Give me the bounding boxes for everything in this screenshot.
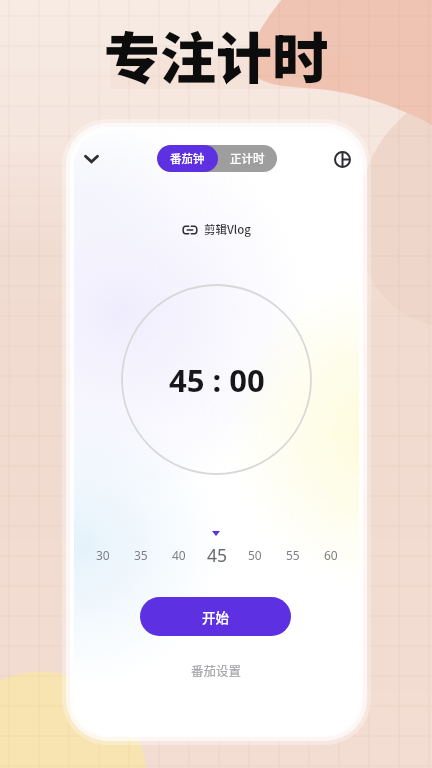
button[interactable]: 正计时	[218, 145, 277, 172]
button[interactable]: 50	[236, 542, 274, 568]
staticText: 45	[207, 543, 228, 567]
button[interactable]: 番茄设置	[183, 657, 250, 683]
button[interactable]: 35	[122, 542, 160, 568]
staticText: 40	[172, 547, 186, 563]
button[interactable]: 60	[312, 542, 350, 568]
button[interactable]: 45	[198, 542, 236, 568]
staticText: 50	[248, 547, 262, 563]
button[interactable]: 开始	[140, 597, 291, 636]
staticText: 正计时	[230, 150, 265, 167]
staticText: 60	[324, 547, 338, 563]
staticText: 45 : 00	[169, 359, 265, 401]
staticText: 开始	[202, 607, 229, 627]
staticText: 30	[96, 547, 110, 563]
button[interactable]: 剪辑Vlog	[176, 217, 257, 242]
staticText: 55	[286, 547, 300, 563]
staticText: 番茄钟	[170, 150, 205, 167]
staticText: 35	[134, 547, 148, 563]
staticText: 剪辑Vlog	[204, 221, 251, 238]
staticText: 番茄设置	[191, 661, 242, 679]
button[interactable]: 番茄钟	[157, 145, 218, 172]
button[interactable]: Collapse	[75, 143, 107, 175]
button[interactable]: 55	[274, 542, 312, 568]
button[interactable]: 30	[84, 542, 122, 568]
staticText: 专注计时	[104, 14, 328, 95]
button[interactable]: 40	[160, 542, 198, 568]
button[interactable]: Statistics	[326, 143, 358, 175]
